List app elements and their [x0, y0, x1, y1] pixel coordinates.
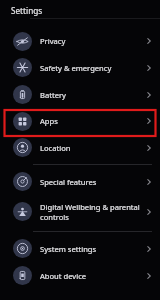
staticText: System settings: [40, 244, 97, 254]
button[interactable]: Safety & emergency: [0, 54, 160, 81]
staticText: Privacy: [40, 36, 66, 46]
staticText: Safety & emergency: [40, 63, 112, 73]
button[interactable]: Apps: [0, 108, 160, 134]
button[interactable]: System settings: [0, 235, 160, 262]
button[interactable]: About device: [0, 262, 160, 289]
button[interactable]: Battery: [0, 81, 160, 108]
staticText: About device: [40, 271, 87, 281]
staticText: Location: [40, 143, 71, 153]
staticText: Apps: [40, 116, 58, 126]
button[interactable]: Privacy: [0, 28, 160, 54]
staticText: Settings: [11, 5, 43, 16]
button[interactable]: Digital Wellbeing & parental controls: [0, 195, 160, 228]
staticText: Special features: [40, 177, 97, 187]
button[interactable]: Location: [0, 134, 160, 161]
staticText: Digital Wellbeing & parental controls: [40, 202, 140, 222]
button[interactable]: Special features: [0, 168, 160, 195]
staticText: Battery: [40, 90, 66, 100]
